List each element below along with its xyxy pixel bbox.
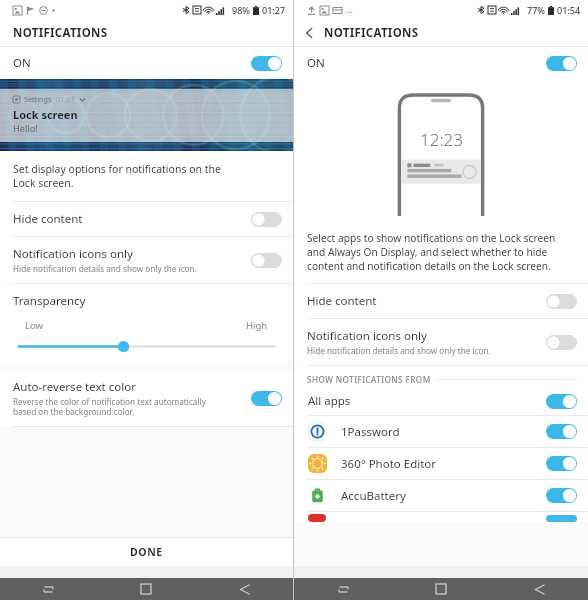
staticText: AccuBattery bbox=[341, 488, 546, 504]
staticText: 1Password bbox=[341, 424, 546, 440]
staticText: Transparency bbox=[13, 293, 86, 309]
button[interactable]: AccuBattery bbox=[294, 479, 588, 511]
staticText: Hide notification details and show only … bbox=[307, 345, 491, 356]
button[interactable]: Notification icons only bbox=[294, 318, 588, 365]
button[interactable]: Home bbox=[392, 578, 490, 600]
button[interactable]: ON bbox=[307, 55, 577, 71]
staticText: All apps bbox=[308, 393, 546, 409]
staticText: Low bbox=[25, 319, 44, 332]
staticText: Notification icons only bbox=[13, 246, 133, 262]
staticText: SHOW NOTIFICATIONS FROM bbox=[307, 374, 431, 385]
staticText: ON bbox=[13, 55, 251, 71]
staticText: Hide content bbox=[307, 293, 377, 309]
button[interactable]: Home bbox=[97, 578, 195, 600]
staticText: Hide notification details and show only … bbox=[13, 263, 197, 274]
staticText: 01:54 bbox=[557, 4, 581, 16]
staticText: Reverse the color of notification text a… bbox=[13, 396, 206, 417]
staticText: ... bbox=[346, 4, 353, 16]
staticText: High bbox=[246, 319, 268, 332]
staticText: Auto-reverse text color bbox=[13, 379, 136, 395]
staticText: Hello! bbox=[13, 122, 38, 135]
button[interactable]: Notification icons only bbox=[0, 236, 293, 283]
button[interactable]: Hide content bbox=[294, 283, 588, 318]
button[interactable]: Hide content bbox=[0, 201, 293, 236]
staticText: NOTIFICATIONS bbox=[324, 25, 419, 41]
staticText: 360° Photo Editor bbox=[341, 456, 546, 472]
staticText: Settings bbox=[24, 94, 52, 104]
button[interactable]: 1Password bbox=[294, 415, 588, 447]
staticText: Notification icons only bbox=[307, 328, 427, 344]
staticText: Select apps to show notifications on the… bbox=[307, 231, 556, 273]
staticText: DONE bbox=[130, 545, 163, 559]
staticText: ON bbox=[307, 55, 546, 71]
button[interactable]: Auto-reverse text color bbox=[0, 370, 293, 426]
staticText: 77% bbox=[527, 4, 545, 16]
staticText: Set display options for notifications on… bbox=[13, 162, 221, 190]
staticText: 01:27 bbox=[56, 94, 75, 104]
button[interactable]: All apps bbox=[294, 387, 588, 415]
button[interactable]: DONE bbox=[0, 538, 293, 566]
staticText: Lock screen bbox=[13, 107, 78, 122]
button[interactable] bbox=[19, 340, 274, 353]
staticText: 12:23 bbox=[420, 128, 463, 151]
staticText: NOTIFICATIONS bbox=[13, 25, 108, 41]
button[interactable]: ON bbox=[13, 55, 282, 71]
button[interactable]: Recents bbox=[0, 578, 97, 600]
button[interactable]: Back bbox=[294, 20, 324, 46]
staticText: Hide content bbox=[13, 211, 83, 227]
button[interactable]: Back bbox=[490, 578, 588, 600]
button[interactable]: Recents bbox=[294, 578, 392, 600]
button[interactable]: Back bbox=[195, 578, 293, 600]
button[interactable]: 360° Photo Editor bbox=[294, 447, 588, 479]
staticText: 98% bbox=[232, 4, 250, 16]
staticText: 01:27 bbox=[262, 4, 286, 16]
